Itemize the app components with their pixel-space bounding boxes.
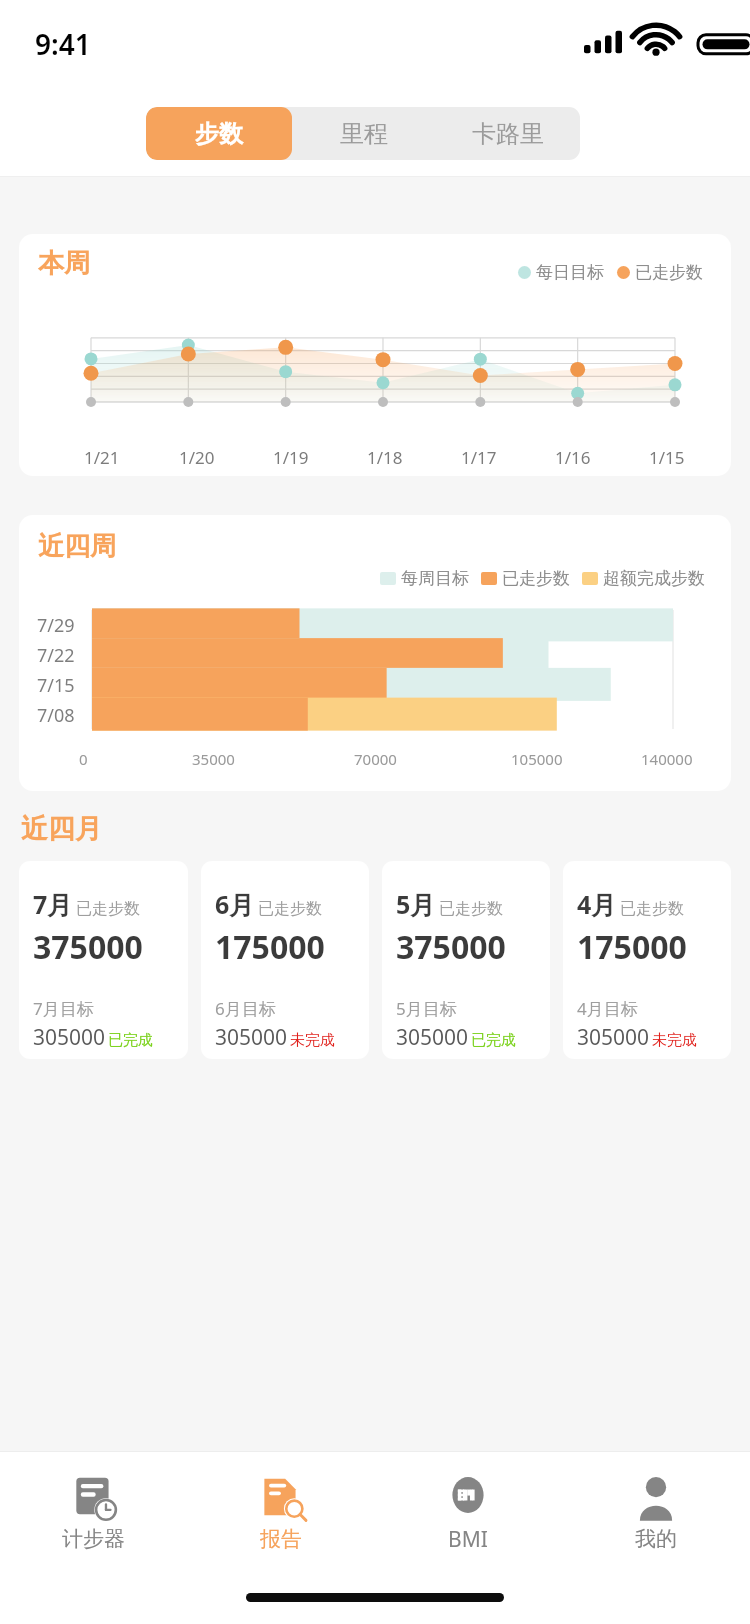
staticText: 9:41 [35, 25, 91, 63]
staticText: 超额完成步数 [603, 568, 705, 589]
staticText: 6月 [215, 887, 255, 921]
staticText: 105000 [511, 749, 563, 769]
staticText: 已走步数 [76, 899, 140, 919]
staticText: 已完成 [471, 1031, 516, 1050]
staticText: 70000 [354, 749, 397, 769]
staticText: 175000 [577, 925, 687, 969]
staticText: 1/20 [179, 446, 215, 469]
staticText: 375000 [396, 925, 506, 969]
staticText: 每周目标 [401, 568, 469, 589]
staticText: 7月 [33, 887, 73, 921]
staticText: 里程 [340, 119, 388, 149]
staticText: 已走步数 [620, 899, 684, 919]
staticText: 1/21 [84, 446, 120, 469]
staticText: 4月目标 [577, 997, 638, 1020]
staticText: 1/15 [649, 446, 685, 469]
staticText: 每日目标 [536, 262, 604, 283]
staticText: 近四周 [38, 530, 116, 563]
staticText: 7/15 [37, 673, 75, 698]
button[interactable]: 5月 [382, 861, 550, 1059]
staticText: 35000 [192, 749, 235, 769]
button[interactable]: 4月 [563, 861, 731, 1059]
button[interactable]: BMI [374, 1452, 562, 1570]
staticText: 计步器 [62, 1526, 125, 1552]
staticText: 卡路里 [472, 119, 544, 149]
staticText: 305000 [215, 1023, 288, 1052]
staticText: 1/17 [461, 446, 497, 469]
button[interactable]: 卡路里 [436, 107, 580, 160]
staticText: 7月目标 [33, 997, 94, 1020]
staticText: 已走步数 [635, 262, 703, 283]
staticText: 140000 [641, 749, 693, 769]
staticText: 305000 [33, 1023, 106, 1052]
staticText: 7/08 [37, 703, 75, 728]
staticText: 报告 [260, 1526, 302, 1552]
staticText: 已完成 [108, 1031, 153, 1050]
staticText: BMI [448, 1525, 488, 1554]
button[interactable]: 6月 [201, 861, 369, 1059]
staticText: 已走步数 [439, 899, 503, 919]
staticText: 0 [79, 749, 88, 769]
staticText: 近四月 [21, 812, 102, 846]
staticText: 已走步数 [502, 568, 570, 589]
staticText: 175000 [215, 925, 325, 969]
button[interactable]: 步数 [146, 107, 292, 160]
staticText: 6月目标 [215, 997, 276, 1020]
button[interactable]: 计步器 [0, 1452, 187, 1570]
staticText: 375000 [33, 925, 143, 969]
staticText: 7/22 [37, 643, 75, 668]
staticText: 未完成 [290, 1031, 335, 1050]
staticText: 1/19 [273, 446, 309, 469]
staticText: 未完成 [652, 1031, 697, 1050]
button[interactable]: 报告 [187, 1452, 374, 1570]
button[interactable]: 里程 [292, 107, 436, 160]
button[interactable]: 我的 [562, 1452, 750, 1570]
staticText: 4月 [577, 887, 617, 921]
staticText: 5月 [396, 887, 436, 921]
staticText: 7/29 [37, 613, 75, 638]
staticText: 本周 [38, 247, 90, 280]
staticText: 5月目标 [396, 997, 457, 1020]
staticText: 305000 [577, 1023, 650, 1052]
staticText: 步数 [195, 119, 243, 149]
staticText: 已走步数 [258, 899, 322, 919]
staticText: 1/16 [555, 446, 591, 469]
staticText: 我的 [635, 1526, 677, 1552]
button[interactable]: 7月 [19, 861, 188, 1059]
staticText: 1/18 [367, 446, 403, 469]
staticText: 305000 [396, 1023, 469, 1052]
